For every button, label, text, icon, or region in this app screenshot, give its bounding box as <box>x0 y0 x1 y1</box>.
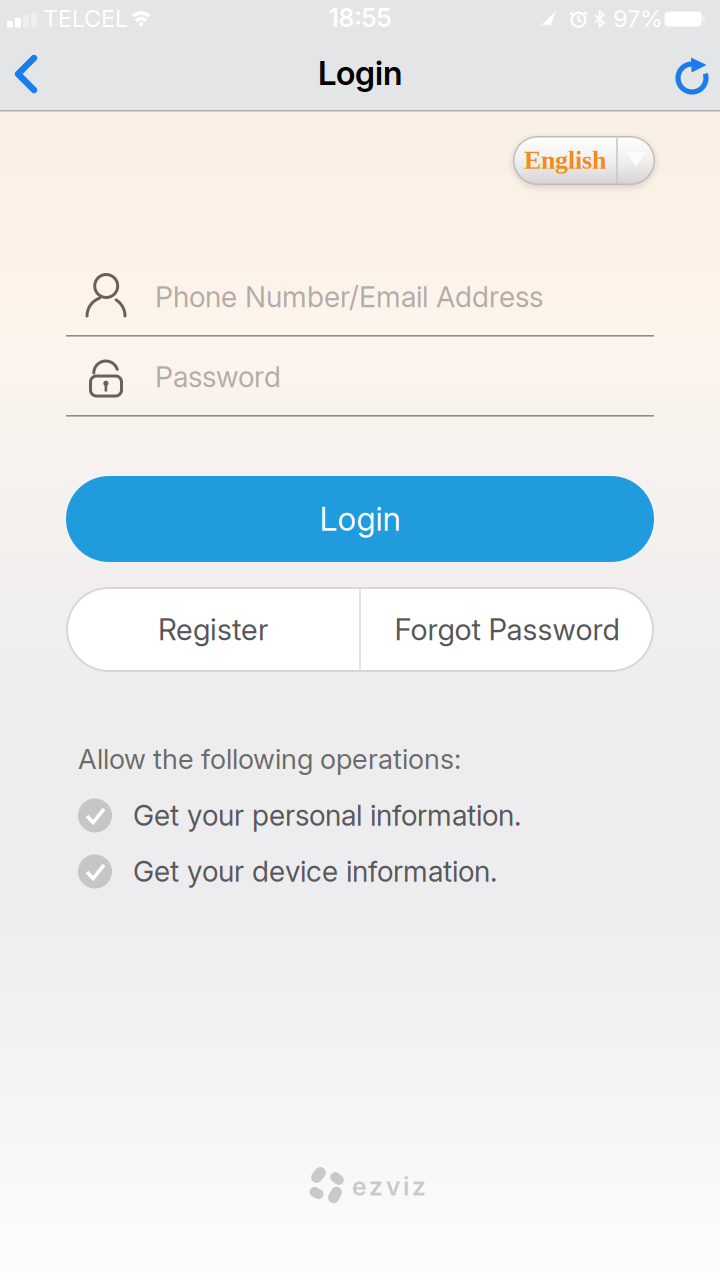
button[interactable]: Refresh <box>662 40 720 110</box>
button[interactable]: Language: English <box>513 136 655 185</box>
staticText: English <box>524 146 606 174</box>
staticText: Login <box>318 53 402 93</box>
staticText: Get your device information. <box>133 854 497 889</box>
staticText: Phone Number/Email Address <box>155 280 543 314</box>
staticText: Register <box>158 612 268 647</box>
button[interactable]: Register <box>66 587 360 672</box>
staticText: 18:55 <box>328 3 391 33</box>
button[interactable]: Back <box>0 39 56 109</box>
staticText: TELCEL <box>43 4 128 33</box>
staticText: ezviz <box>352 1171 426 1202</box>
staticText: Forgot Password <box>394 612 619 647</box>
button[interactable]: Login <box>66 476 654 562</box>
staticText: Login <box>319 499 400 539</box>
staticText: Get your personal information. <box>133 798 521 833</box>
button[interactable]: Forgot Password <box>360 587 654 672</box>
staticText: 97% <box>613 4 663 33</box>
staticText: Allow the following operations: <box>78 742 461 776</box>
staticText: Password <box>155 360 281 394</box>
